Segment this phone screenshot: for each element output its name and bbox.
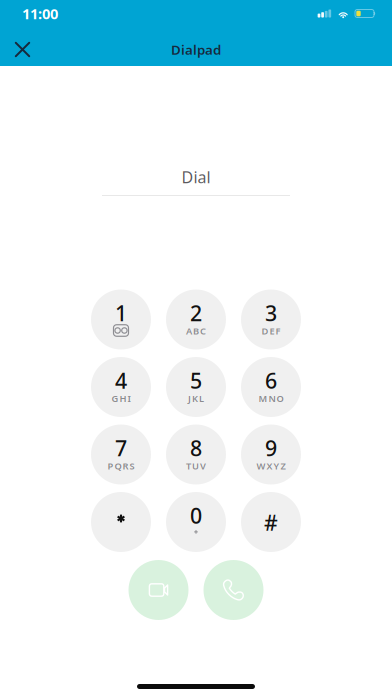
- staticText: 3: [265, 299, 277, 327]
- staticText: MNO: [258, 392, 283, 405]
- staticText: DEF: [261, 325, 280, 337]
- staticText: #: [264, 508, 278, 537]
- staticText: Dialpad: [171, 41, 221, 58]
- staticText: 2: [190, 299, 202, 327]
- staticText: WXYZ: [256, 460, 285, 472]
- button[interactable]: 2: [166, 289, 226, 349]
- button[interactable]: Close: [0, 31, 45, 67]
- staticText: ABC: [186, 325, 206, 337]
- button[interactable]: 4: [91, 357, 151, 417]
- staticText: 8: [190, 434, 202, 462]
- staticText: 6: [265, 366, 277, 395]
- button[interactable]: 1: [91, 289, 151, 349]
- staticText: TUV: [186, 460, 206, 472]
- button[interactable]: Pound: [241, 492, 301, 552]
- button[interactable]: 3: [241, 289, 301, 349]
- button[interactable]: 0: [166, 492, 226, 552]
- button[interactable]: 9: [241, 424, 301, 484]
- staticText: Dial: [181, 166, 210, 188]
- button[interactable]: Video call: [128, 560, 188, 620]
- button[interactable]: Call: [203, 560, 263, 620]
- staticText: 0: [190, 501, 202, 530]
- staticText: 11:00: [22, 4, 58, 23]
- staticText: 7: [115, 434, 127, 462]
- button[interactable]: 7: [91, 424, 151, 484]
- staticText: JKL: [188, 392, 204, 405]
- staticText: 9: [265, 434, 277, 462]
- staticText: PQRS: [107, 460, 134, 472]
- staticText: GHI: [111, 392, 130, 405]
- staticText: 1: [115, 299, 127, 327]
- button[interactable]: Star: [91, 492, 151, 552]
- staticText: 5: [190, 366, 202, 395]
- staticText: 4: [115, 366, 127, 395]
- button[interactable]: 8: [166, 424, 226, 484]
- button[interactable]: 6: [241, 357, 301, 417]
- button[interactable]: 5: [166, 357, 226, 417]
